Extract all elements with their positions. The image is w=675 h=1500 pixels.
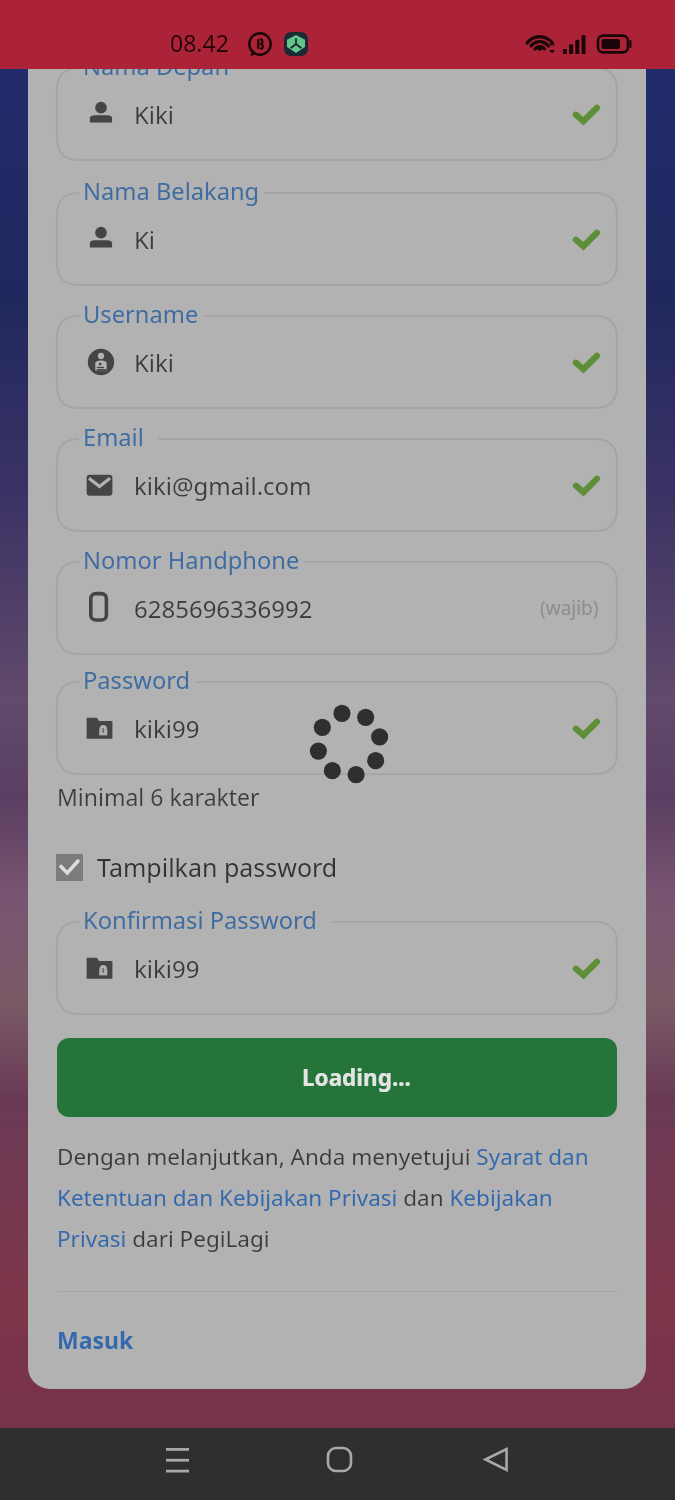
staticText: Konfirmasi Password bbox=[83, 904, 317, 936]
staticText: kiki99 bbox=[134, 712, 200, 745]
button[interactable]: Kiki bbox=[57, 316, 617, 408]
staticText: Loading... bbox=[302, 1062, 411, 1093]
button[interactable]: Loading... bbox=[57, 1038, 617, 1117]
staticText: Nama Depan bbox=[83, 69, 230, 82]
staticText: Email bbox=[83, 421, 144, 453]
staticText: kiki99 bbox=[134, 952, 200, 985]
button[interactable]: kiki@gmail.com bbox=[57, 439, 617, 531]
staticText: Dengan melanjutkan, Anda menyetujui Syar… bbox=[57, 1141, 617, 1254]
staticText: 08.42 bbox=[170, 27, 229, 58]
button[interactable]: kiki99 bbox=[57, 682, 617, 774]
button[interactable]: Tampilkan password bbox=[56, 850, 338, 884]
button[interactable]: Kiki bbox=[57, 69, 617, 160]
staticText: Password bbox=[83, 664, 191, 696]
staticText: Masuk bbox=[57, 1324, 134, 1355]
staticText: Nomor Handphone bbox=[83, 544, 300, 576]
button[interactable]: Masuk bbox=[57, 1324, 134, 1355]
staticText: Nama Belakang bbox=[83, 175, 260, 207]
button[interactable]: Back bbox=[464, 1423, 528, 1495]
button[interactable]: 6285696336992 bbox=[57, 562, 617, 654]
button[interactable]: kiki99 bbox=[57, 922, 617, 1014]
staticText: Kiki bbox=[134, 346, 175, 379]
staticText: (wajib) bbox=[540, 595, 599, 621]
staticText: Tampilkan password bbox=[97, 850, 338, 884]
staticText: Username bbox=[83, 298, 199, 330]
staticText: Minimal 6 karakter bbox=[57, 781, 260, 812]
staticText: Kiki bbox=[134, 98, 175, 131]
button[interactable]: Home bbox=[307, 1423, 371, 1495]
staticText: 6285696336992 bbox=[134, 592, 313, 625]
staticText: Ki bbox=[134, 223, 156, 256]
button[interactable]: Ki bbox=[57, 193, 617, 285]
staticText: kiki@gmail.com bbox=[134, 469, 312, 502]
button[interactable]: Recent apps bbox=[145, 1423, 209, 1495]
